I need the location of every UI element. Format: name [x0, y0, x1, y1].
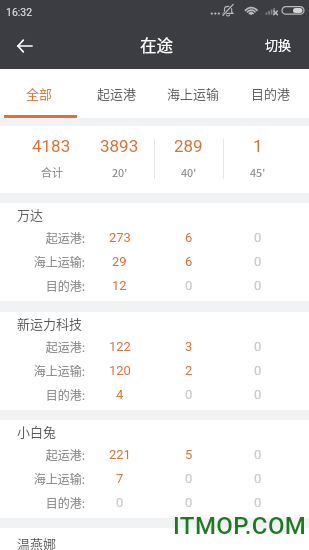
staticText: 合计 — [41, 164, 63, 180]
staticText: 0 — [254, 447, 262, 462]
staticText: 120 — [109, 363, 131, 378]
button[interactable]: 全部 — [0, 69, 78, 118]
staticText: 1 — [253, 136, 263, 156]
button[interactable]: 目的港: — [0, 273, 309, 297]
staticText: 海上运输: — [17, 362, 85, 379]
staticText: 目的港: — [17, 386, 85, 403]
button[interactable]: 起运港 — [78, 69, 155, 118]
staticText: 16:32 — [6, 6, 33, 18]
staticText: 0 — [254, 387, 262, 402]
staticText: 起运港: — [17, 446, 85, 463]
staticText: 45' — [250, 164, 266, 180]
staticText: ITMOP.COM — [173, 512, 307, 540]
staticText: 12 — [112, 278, 127, 293]
staticText: 40' — [181, 164, 197, 180]
button[interactable]: 起运港: — [0, 334, 309, 358]
staticText: 273 — [109, 230, 131, 245]
staticText: 3893 — [100, 136, 139, 156]
staticText: 0 — [254, 495, 262, 510]
staticText: 122 — [109, 339, 131, 354]
staticText: 海上运输 — [167, 84, 220, 103]
staticText: 3 — [185, 339, 193, 354]
staticText: 起运港: — [17, 229, 85, 246]
button[interactable]: 海上运输 — [155, 69, 232, 118]
staticText: 目的港: — [17, 277, 85, 294]
staticText: 289 — [174, 136, 203, 156]
button[interactable]: 切换 — [250, 24, 309, 69]
staticText: 0 — [254, 254, 262, 269]
staticText: 6 — [185, 254, 193, 269]
staticText: 5 — [185, 447, 193, 462]
staticText: 小白兔 — [17, 422, 57, 441]
staticText: 0 — [254, 230, 262, 245]
staticText: 0 — [254, 471, 262, 486]
button[interactable]: 目的港 — [232, 69, 309, 118]
staticText: 20' — [112, 164, 128, 180]
staticText: 切换 — [265, 35, 292, 54]
button[interactable]: 起运港: — [0, 442, 309, 466]
button[interactable]: 目的港: — [0, 490, 309, 514]
staticText: 7 — [116, 471, 124, 486]
staticText: 0 — [116, 495, 124, 510]
staticText: 6 — [185, 230, 193, 245]
staticText: 0 — [254, 363, 262, 378]
staticText: 0 — [185, 495, 193, 510]
staticText: 0 — [185, 471, 193, 486]
staticText: 29 — [112, 254, 127, 269]
staticText: 海上运输: — [17, 253, 85, 270]
staticText: 海上运输: — [17, 470, 85, 487]
button[interactable]: 海上运输: — [0, 466, 309, 490]
staticText: 0 — [254, 339, 262, 354]
staticText: 0 — [254, 278, 262, 293]
staticText: 4183 — [32, 136, 71, 156]
staticText: 万达 — [17, 205, 44, 224]
button[interactable]: 海上运输: — [0, 249, 309, 273]
staticText: 起运港 — [97, 84, 137, 103]
staticText: 目的港 — [251, 84, 291, 103]
staticText: 在途 — [140, 33, 173, 57]
staticText: 4 — [116, 387, 124, 402]
staticText: 全部 — [26, 84, 53, 103]
staticText: 起运港: — [17, 338, 85, 355]
staticText: 0 — [185, 387, 193, 402]
staticText: 新运力科技 — [17, 314, 83, 333]
staticText: 温燕娜 — [17, 534, 57, 550]
button[interactable]: 起运港: — [0, 225, 309, 249]
button[interactable]: Back — [0, 24, 48, 69]
staticText: 0 — [185, 278, 193, 293]
staticText: 221 — [109, 447, 131, 462]
staticText: 2 — [185, 363, 193, 378]
staticText: 目的港: — [17, 494, 85, 511]
button[interactable]: 海上运输: — [0, 358, 309, 382]
button[interactable]: 目的港: — [0, 382, 309, 406]
